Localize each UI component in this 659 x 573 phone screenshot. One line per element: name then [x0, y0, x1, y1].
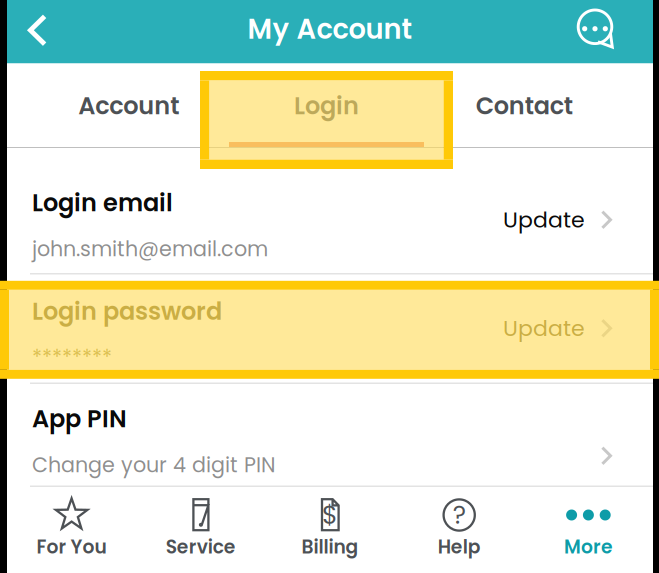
- staticText: Login: [294, 89, 359, 122]
- staticText: My Account: [247, 10, 412, 48]
- staticText: More: [564, 534, 613, 560]
- staticText: Account: [78, 89, 179, 122]
- button[interactable]: Login email: [7, 166, 653, 273]
- button[interactable]: Account: [30, 63, 228, 148]
- staticText: Login password: [32, 294, 222, 328]
- staticText: Help: [438, 534, 481, 560]
- staticText: Billing: [301, 534, 358, 560]
- staticText: john.smith@email.com: [32, 235, 268, 263]
- button[interactable]: More: [524, 487, 653, 573]
- button[interactable]: Back: [7, 0, 68, 63]
- button[interactable]: Login password: [7, 274, 653, 382]
- staticText: ********: [32, 343, 112, 372]
- button[interactable]: Contact: [425, 63, 623, 148]
- button[interactable]: ?: [395, 487, 524, 573]
- staticText: Service: [166, 534, 236, 560]
- button[interactable]: Messages: [537, 0, 653, 63]
- button[interactable]: $: [265, 487, 395, 573]
- staticText: App PIN: [32, 402, 127, 436]
- staticText: ?: [453, 497, 466, 533]
- staticText: Login email: [32, 186, 173, 220]
- staticText: For You: [37, 534, 107, 560]
- button[interactable]: Login: [228, 63, 425, 148]
- staticText: Update: [503, 204, 585, 235]
- button[interactable]: App PIN: [7, 384, 653, 485]
- staticText: Contact: [476, 89, 573, 122]
- button[interactable]: For You: [7, 487, 136, 573]
- staticText: $: [322, 497, 338, 533]
- button[interactable]: Service: [136, 487, 265, 573]
- staticText: Change your 4 digit PIN: [32, 451, 276, 479]
- staticText: Update: [503, 313, 585, 344]
